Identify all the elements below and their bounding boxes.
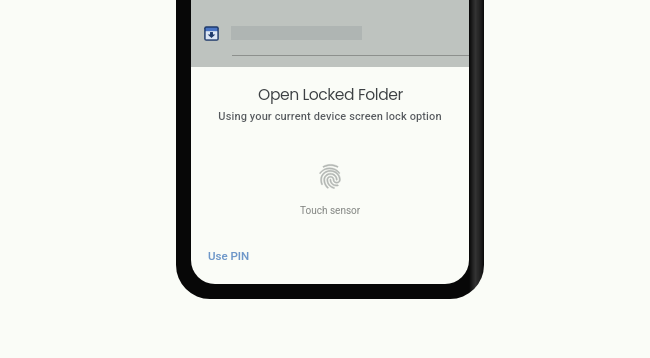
button[interactable]: Locked folder — [203, 25, 220, 42]
button[interactable]: Fingerprint sensor — [316, 162, 345, 191]
staticText: Use PIN — [208, 249, 250, 262]
staticText: Open Locked Folder — [258, 84, 403, 106]
button[interactable]: Use PIN — [200, 245, 258, 266]
staticText: Using your current device screen lock op… — [218, 110, 442, 123]
staticText: Touch sensor — [300, 205, 361, 217]
